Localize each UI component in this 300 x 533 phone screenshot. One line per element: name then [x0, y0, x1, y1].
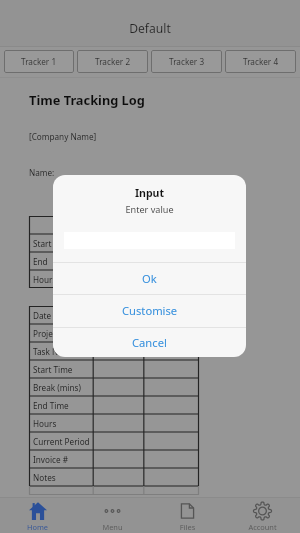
staticText: Input — [53, 186, 246, 200]
staticText: Menu — [75, 522, 150, 532]
button[interactable]: Home — [0, 497, 75, 533]
staticText: Files — [150, 522, 225, 532]
staticText: Break (mins) — [33, 382, 81, 393]
staticText: Account — [225, 522, 300, 532]
staticText: Date — [33, 310, 52, 321]
staticText: Tracker 4 — [243, 56, 279, 67]
staticText: Tracker 2 — [95, 56, 131, 67]
staticText: Tracker 1 — [21, 56, 57, 67]
button[interactable]: Account — [225, 497, 300, 533]
staticText: Home — [0, 522, 75, 532]
staticText: End — [33, 256, 48, 267]
staticText: Project — [33, 328, 60, 339]
staticText: Name: — [29, 167, 55, 178]
button[interactable]: Tracker 4 — [225, 50, 296, 73]
staticText: Hours — [33, 418, 57, 429]
button[interactable]: Files — [150, 497, 225, 533]
staticText: Time Tracking Log — [29, 91, 145, 108]
staticText: Invoice # — [33, 454, 69, 465]
staticText: Notes — [33, 472, 56, 483]
staticText: Enter value — [53, 203, 246, 215]
button[interactable]: Tracker 2 — [77, 50, 148, 73]
staticText: Cancel — [132, 335, 167, 350]
button[interactable]: Customise — [53, 294, 246, 327]
staticText: [Company Name] — [29, 131, 97, 142]
staticText: Hours — [33, 274, 57, 285]
staticText: Start — [33, 238, 52, 249]
staticText: End Time — [33, 400, 69, 411]
staticText: Customise — [122, 303, 178, 318]
button[interactable]: Ok — [53, 262, 246, 294]
staticText: Task Name — [33, 346, 76, 357]
button[interactable]: Tracker 1 — [4, 50, 74, 73]
staticText: Current Period — [33, 436, 90, 447]
staticText: Ok — [142, 271, 157, 286]
staticText: Default — [0, 20, 300, 36]
staticText: Tracker 3 — [169, 56, 205, 67]
button[interactable]: Cancel — [53, 327, 246, 357]
button[interactable]: Tracker 3 — [151, 50, 222, 73]
button[interactable]: Menu — [75, 497, 150, 533]
staticText: Start Time — [33, 364, 73, 375]
